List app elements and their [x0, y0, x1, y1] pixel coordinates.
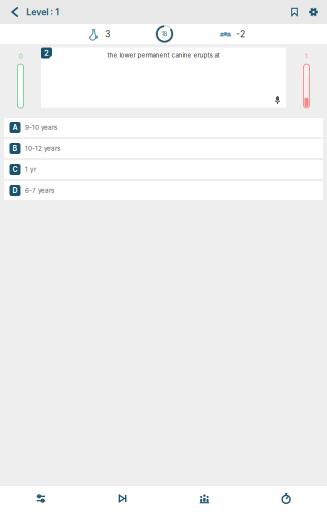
staticText: 1: [305, 52, 308, 60]
button[interactable]: Filters: [0, 486, 82, 512]
button[interactable]: Leaderboard: [163, 486, 245, 512]
button[interactable]: A: [4, 118, 323, 137]
staticText: 18: [161, 30, 167, 38]
staticText: 0: [18, 52, 22, 60]
staticText: 2: [44, 48, 49, 58]
staticText: 9-10 years: [25, 124, 57, 131]
staticText: C: [12, 165, 17, 174]
button[interactable]: Settings: [304, 0, 323, 24]
staticText: B: [12, 144, 17, 153]
button[interactable]: B: [4, 139, 323, 158]
staticText: the lower permanent canine erupts at: [107, 51, 219, 59]
button[interactable]: Bookmark: [285, 0, 304, 24]
staticText: -2: [236, 29, 245, 39]
staticText: Level : 1: [26, 7, 59, 17]
staticText: A: [12, 123, 17, 132]
button[interactable]: Next question: [82, 486, 164, 512]
staticText: 1 yr: [25, 166, 36, 173]
button[interactable]: Timer: [245, 486, 327, 512]
staticText: 10-12 years: [25, 145, 60, 152]
staticText: D: [12, 186, 17, 195]
staticText: 6-7 years: [25, 187, 54, 194]
button[interactable]: Level : 1: [0, 0, 64, 24]
button[interactable]: C: [4, 160, 323, 179]
staticText: 3: [105, 29, 110, 39]
button[interactable]: D: [4, 181, 323, 200]
